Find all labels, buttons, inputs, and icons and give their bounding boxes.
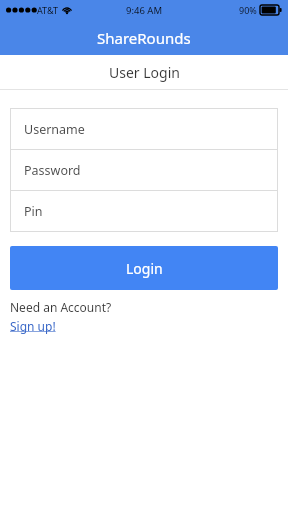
staticText: Username — [24, 121, 85, 138]
staticText: Pin — [24, 203, 43, 220]
staticText: AT&T — [37, 4, 58, 16]
staticText: ShareRounds — [97, 28, 191, 48]
button[interactable]: Sign up! — [10, 318, 56, 334]
staticText: Sign up! — [10, 318, 56, 334]
staticText: User Login — [109, 63, 180, 82]
staticText: Login — [126, 259, 163, 278]
button[interactable]: Username — [10, 109, 278, 149]
button[interactable]: Password — [10, 150, 278, 190]
staticText: Need an Account? — [10, 299, 112, 315]
button[interactable]: Login — [10, 246, 278, 290]
button[interactable]: Pin — [10, 191, 278, 231]
staticText: Password — [24, 162, 81, 179]
staticText: 9:46 AM — [126, 4, 163, 17]
staticText: 90% — [239, 4, 257, 16]
